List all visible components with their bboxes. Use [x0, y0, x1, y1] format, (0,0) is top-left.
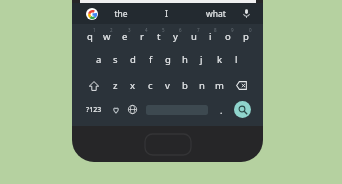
button[interactable]: Emoji and stickers: [107, 98, 124, 121]
button[interactable]: k: [211, 48, 228, 71]
staticText: 5: [162, 27, 165, 33]
staticText: 3: [128, 27, 131, 33]
staticText: g: [165, 53, 171, 66]
button[interactable]: f: [142, 48, 159, 71]
staticText: 4: [145, 27, 148, 33]
staticText: u: [191, 30, 197, 43]
staticText: t: [157, 30, 161, 43]
staticText: s: [113, 53, 118, 66]
staticText: w: [103, 30, 111, 43]
staticText: x: [130, 79, 136, 92]
staticText: .: [220, 104, 223, 116]
staticText: l: [235, 53, 238, 66]
button[interactable]: a: [90, 48, 107, 71]
button[interactable]: what: [200, 3, 232, 24]
staticText: i: [209, 30, 212, 43]
button[interactable]: Change language: [124, 98, 141, 121]
staticText: ?123: [86, 105, 102, 115]
button[interactable]: 6: [167, 24, 184, 47]
staticText: 6: [179, 27, 182, 33]
staticText: 8: [214, 27, 217, 33]
staticText: j: [200, 53, 203, 66]
staticText: o: [225, 30, 231, 43]
button[interactable]: 5: [150, 24, 167, 47]
staticText: the: [114, 8, 128, 20]
staticText: what: [206, 8, 226, 20]
staticText: v: [165, 79, 170, 92]
button[interactable]: Shift: [81, 74, 107, 97]
button[interactable]: Voice input: [240, 7, 252, 19]
button[interactable]: d: [124, 48, 141, 71]
staticText: a: [96, 53, 102, 66]
staticText: f: [149, 53, 153, 66]
button[interactable]: l: [228, 48, 245, 71]
button[interactable]: Search: [234, 101, 251, 118]
button[interactable]: g: [159, 48, 176, 71]
button[interactable]: .: [213, 98, 229, 121]
button[interactable]: 1: [81, 24, 98, 47]
button[interactable]: b: [176, 74, 193, 97]
staticText: y: [173, 30, 178, 43]
button[interactable]: 3: [116, 24, 133, 47]
staticText: e: [122, 30, 128, 43]
button[interactable]: Home: [145, 134, 191, 155]
button[interactable]: v: [159, 74, 176, 97]
staticText: I: [165, 8, 168, 20]
staticText: 7: [197, 27, 200, 33]
button[interactable]: Google: [86, 8, 98, 20]
button[interactable]: x: [124, 74, 141, 97]
staticText: h: [182, 53, 188, 66]
button[interactable]: 0: [237, 24, 254, 47]
button[interactable]: j: [193, 48, 210, 71]
staticText: d: [130, 53, 136, 66]
button[interactable]: 8: [202, 24, 219, 47]
button[interactable]: 9: [219, 24, 236, 47]
staticText: z: [113, 79, 118, 92]
staticText: q: [87, 30, 93, 43]
button[interactable]: s: [107, 48, 124, 71]
staticText: p: [243, 30, 249, 43]
button[interactable]: c: [142, 74, 159, 97]
button[interactable]: 7: [185, 24, 202, 47]
staticText: k: [217, 53, 223, 66]
button[interactable]: n: [193, 74, 210, 97]
button[interactable]: 2: [98, 24, 115, 47]
staticText: 2: [110, 27, 113, 33]
button[interactable]: the: [105, 3, 137, 24]
staticText: r: [140, 30, 144, 43]
staticText: c: [148, 79, 153, 92]
button[interactable]: I: [150, 3, 182, 24]
button[interactable]: 4: [133, 24, 150, 47]
button[interactable]: m: [211, 74, 228, 97]
staticText: n: [199, 79, 205, 92]
button[interactable]: Backspace: [228, 74, 254, 97]
button[interactable]: z: [107, 74, 124, 97]
staticText: 9: [231, 27, 234, 33]
staticText: m: [215, 79, 224, 92]
button[interactable]: h: [176, 48, 193, 71]
staticText: b: [182, 79, 188, 92]
staticText: 1: [93, 27, 96, 33]
button[interactable]: ?123: [81, 98, 107, 121]
staticText: 0: [249, 27, 252, 33]
